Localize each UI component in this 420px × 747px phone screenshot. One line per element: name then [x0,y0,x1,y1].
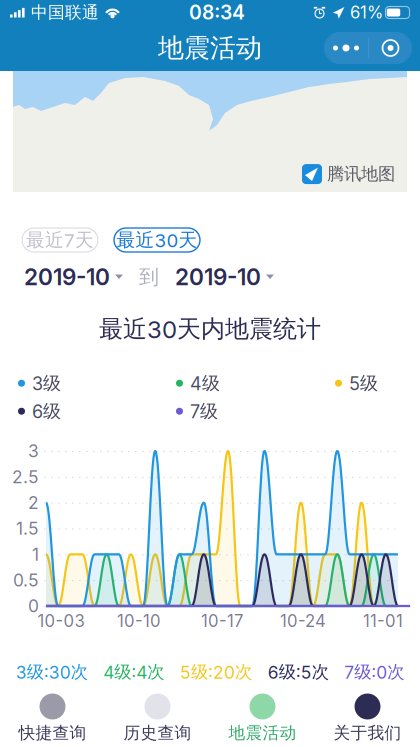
button[interactable]: 地震活动 [210,690,315,747]
staticText: 3 [28,440,39,461]
staticText: 0.5 [13,570,39,591]
staticText: 2019-10 [24,263,110,291]
button[interactable]: Close [369,32,412,64]
staticText: 关于我们 [333,722,401,743]
staticText: 中国联通 [31,2,99,23]
button[interactable]: 最近30天 [114,228,200,252]
staticText: 10-24 [280,611,326,631]
staticText: 11-01 [363,611,403,631]
button[interactable]: More [324,32,368,64]
button[interactable]: 2019-10 [24,263,123,291]
staticText: 腾讯地图 [327,163,395,185]
staticText: 7级 [190,400,218,423]
button[interactable]: 最近7天 [22,228,98,252]
button[interactable]: 快捷查询 [0,690,105,747]
staticText: 1.5 [16,518,39,539]
staticText: 0 [28,595,39,616]
staticText: 2.5 [12,466,39,487]
staticText: 最近30天内地震统计 [99,314,321,344]
staticText: 地震活动 [228,722,296,743]
staticText: 10-10 [117,611,161,631]
staticText: 到 [139,264,159,290]
button[interactable]: 历史查询 [105,690,210,747]
staticText: 3级:30次 [16,661,88,683]
staticText: 08:34 [189,1,245,24]
staticText: 地震活动 [158,32,262,64]
button[interactable]: 2019-10 [175,263,274,291]
button[interactable]: 关于我们 [315,690,420,747]
staticText: 6级 [32,400,61,423]
staticText: 2019-10 [175,263,261,291]
staticText: 4级 [190,372,220,395]
staticText: 61% [350,2,383,23]
staticText: 10-03 [37,611,84,631]
staticText: 3级 [32,372,61,395]
staticText: 6级:5次 [268,661,329,683]
staticText: 4级:4次 [103,661,164,683]
staticText: 历史查询 [123,722,191,743]
staticText: 2 [28,492,39,513]
staticText: 10-17 [201,611,243,631]
staticText: 7级:0次 [344,661,404,683]
staticText: 1 [32,544,39,565]
staticText: 最近30天 [116,228,197,252]
staticText: 5级 [349,372,378,395]
staticText: 最近7天 [26,228,94,252]
staticText: 5级:20次 [180,661,252,683]
staticText: 快捷查询 [18,722,86,743]
